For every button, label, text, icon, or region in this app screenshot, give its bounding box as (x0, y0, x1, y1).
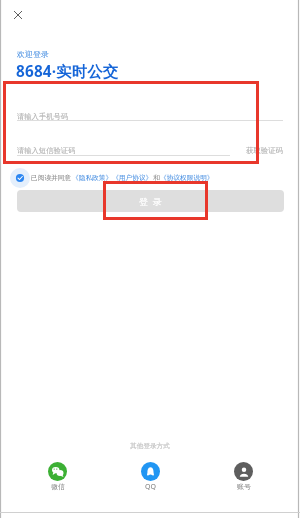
staticText: 微信 (51, 482, 65, 491)
button[interactable]: QQ (141, 462, 160, 492)
button[interactable]: Close (3, 0, 32, 29)
staticText: 获取验证码 (246, 146, 283, 155)
staticText: 已阅读并同意 (31, 174, 72, 182)
button[interactable]: 已阅读并同意 (10, 168, 214, 188)
staticText: QQ (145, 482, 156, 492)
staticText: 和 (153, 174, 160, 182)
staticText: 《隐私政策》《用户协议》 (72, 174, 153, 182)
staticText: 请输入手机号码 (17, 112, 69, 121)
staticText: 《协议权限说明》 (160, 174, 214, 182)
staticText: 8684·实时公交 (16, 61, 119, 82)
staticText: 请输入短信验证码 (17, 146, 76, 155)
staticText: 欢迎登录 (17, 49, 49, 59)
button[interactable]: 账号 (234, 462, 253, 491)
staticText: 登 录 (139, 195, 162, 207)
staticText: 账号 (237, 482, 251, 491)
staticText: 其他登录方式 (0, 442, 300, 450)
button[interactable]: 获取验证码 (246, 146, 283, 155)
button[interactable]: 登 录 (17, 190, 284, 212)
button[interactable]: 微信 (48, 462, 67, 491)
